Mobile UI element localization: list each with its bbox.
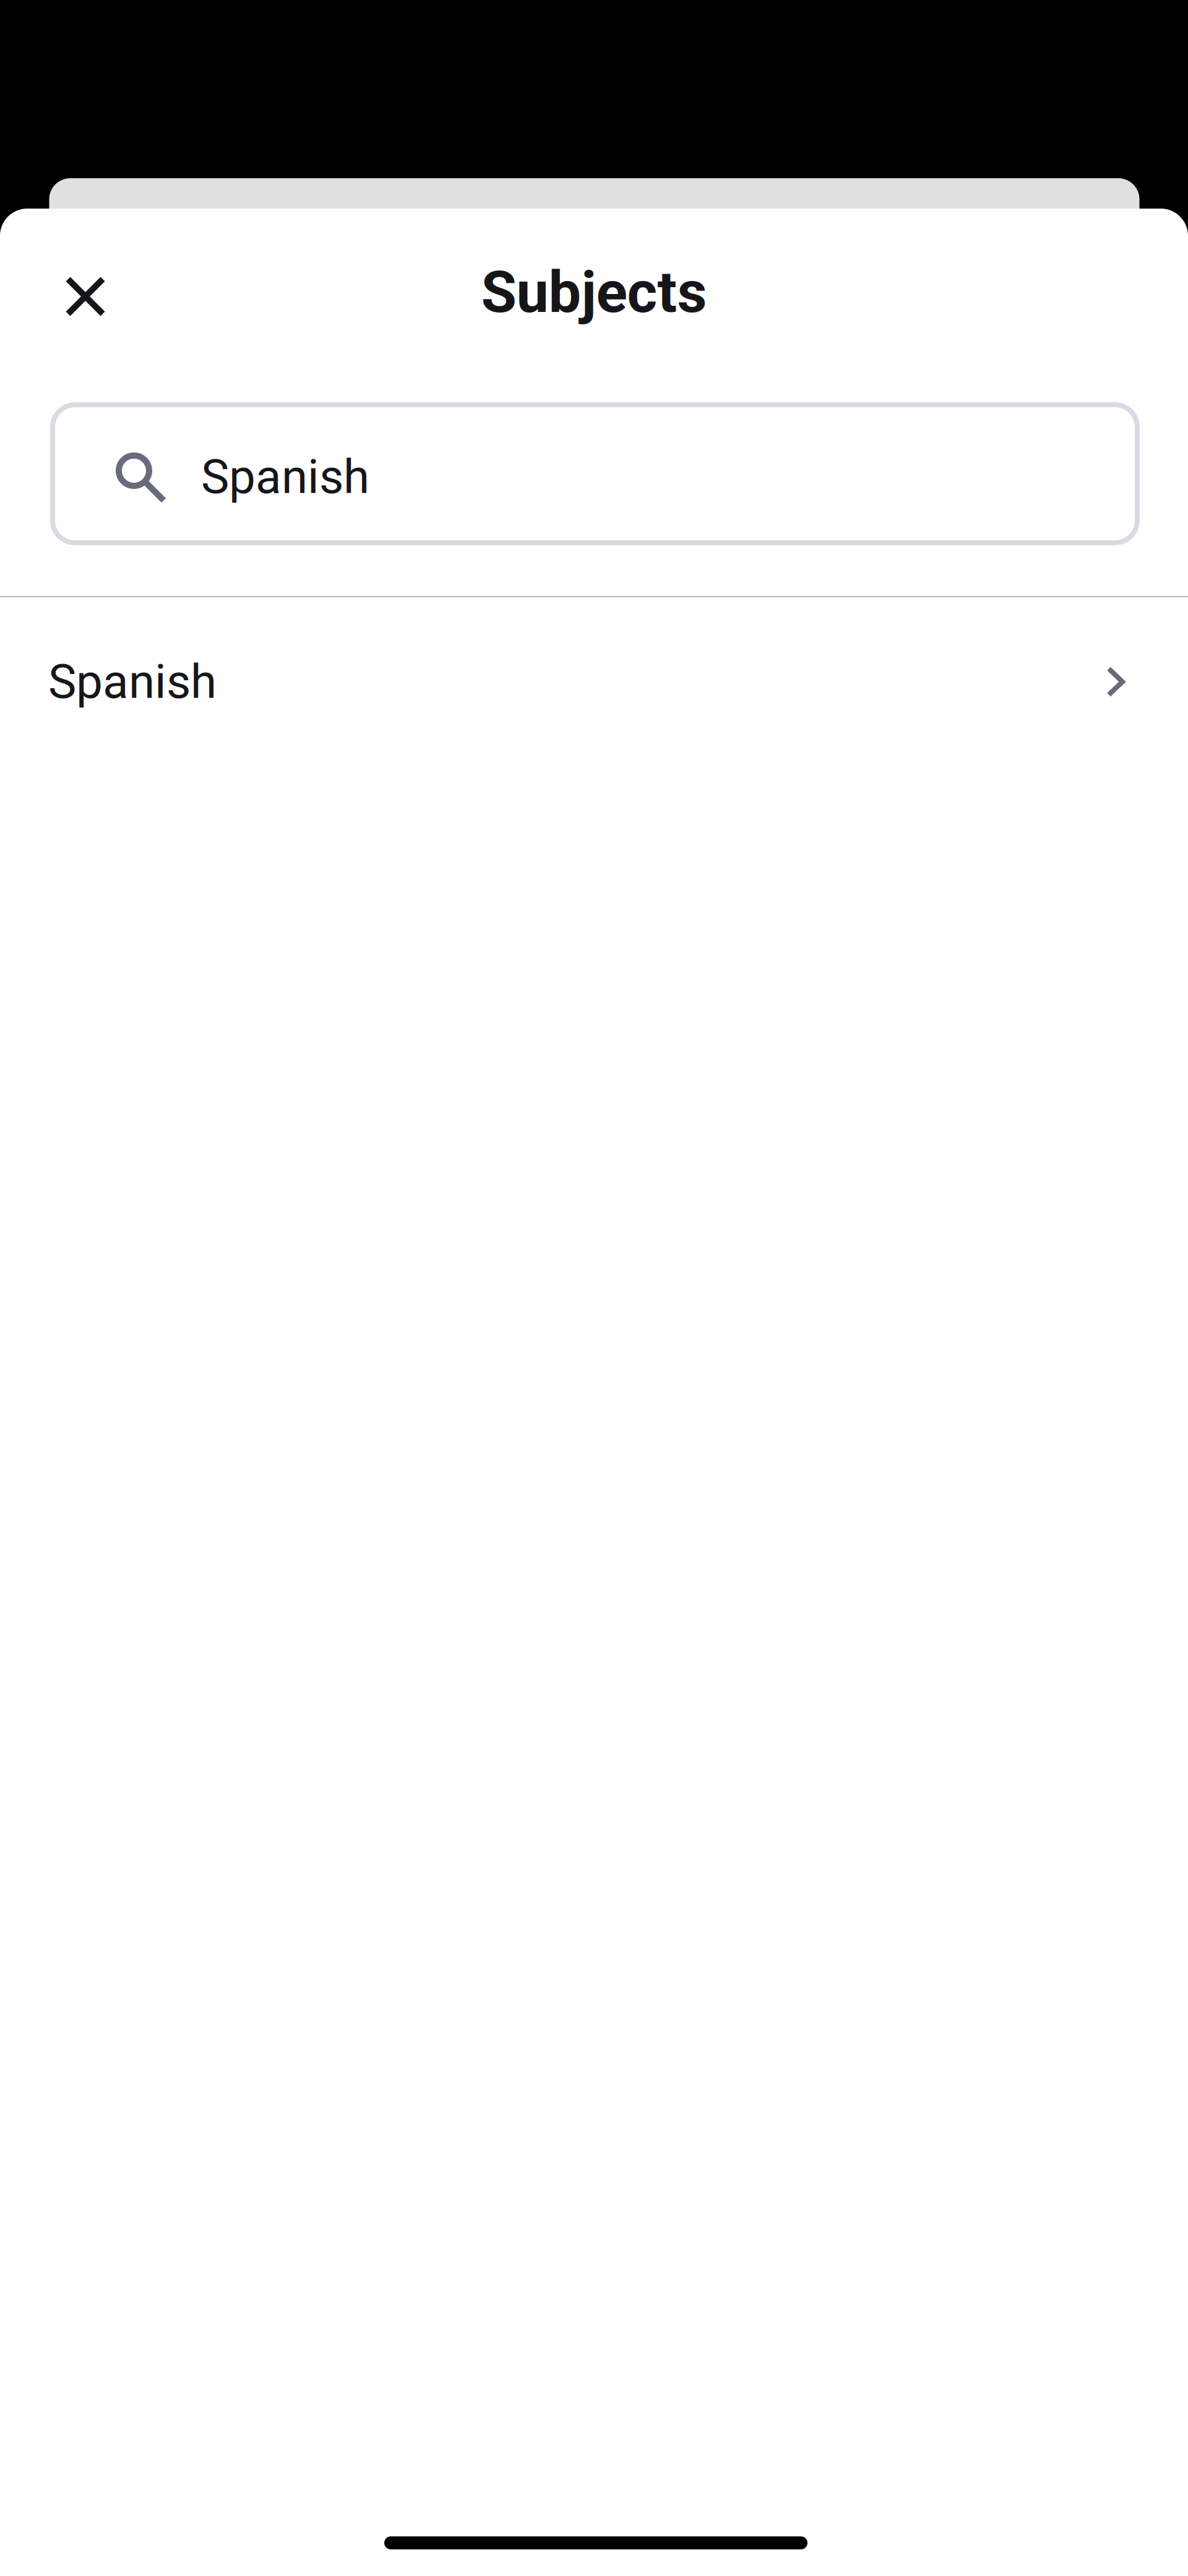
button[interactable]: Spanish [0,628,1188,736]
staticText: Spanish [201,449,369,505]
button[interactable]: Spanish [50,402,1140,545]
staticText: Spanish [48,654,217,709]
staticText: Subjects [481,258,707,326]
button[interactable]: Close [42,253,129,340]
